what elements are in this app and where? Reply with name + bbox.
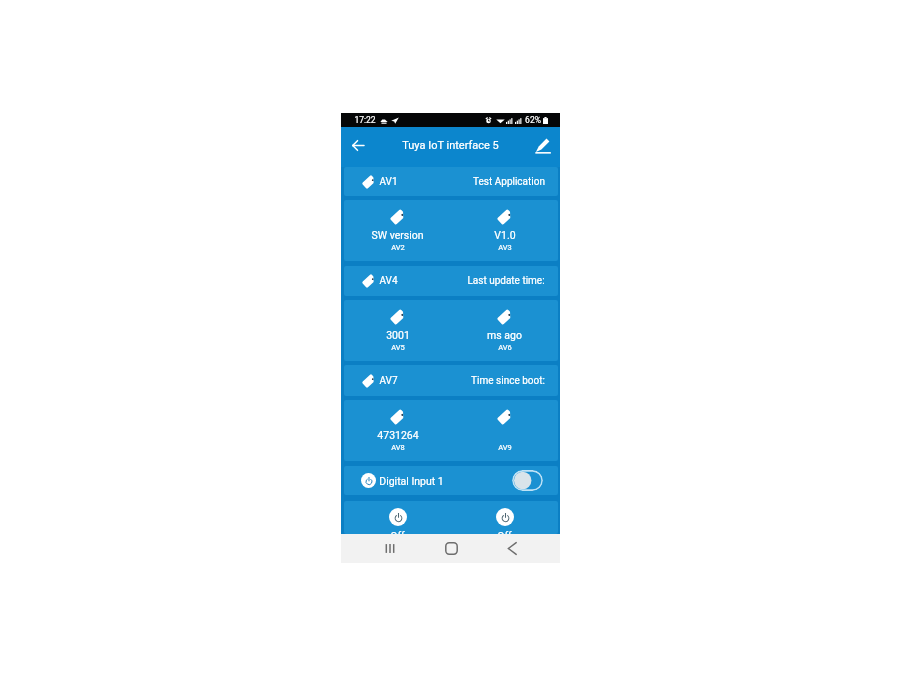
staticText: AV9: [498, 443, 512, 452]
button[interactable]: Recents: [370, 534, 410, 563]
staticText: ms ago: [487, 329, 522, 341]
staticText: SW version: [371, 229, 424, 241]
button[interactable]: SW version: [344, 200, 451, 261]
staticText: Test Application: [473, 176, 545, 188]
staticText: V1.0: [494, 229, 516, 241]
staticText: Off: [390, 530, 405, 534]
staticText: AV8: [391, 443, 405, 452]
button[interactable]: Back: [492, 534, 532, 563]
button[interactable]: AV1: [344, 167, 558, 196]
staticText: 4731264: [377, 429, 419, 441]
button[interactable]: 4731264: [344, 400, 451, 461]
button[interactable]: Digital Input 1: [344, 466, 558, 495]
staticText: AV1: [379, 176, 398, 188]
button[interactable]: AV7: [344, 365, 558, 396]
button[interactable]: ms ago: [451, 300, 558, 361]
staticText: AV6: [498, 343, 512, 352]
button[interactable]: Back: [347, 134, 369, 156]
staticText: Tuya IoT interface 5: [402, 139, 499, 152]
button[interactable]: Home: [431, 534, 471, 563]
button[interactable]: Toggle Digital Input 1: [512, 470, 543, 491]
button[interactable]: Off: [451, 501, 558, 534]
staticText: 17:22: [354, 115, 376, 125]
button[interactable]: Off: [344, 501, 451, 534]
staticText: AV3: [498, 243, 512, 252]
staticText: AV7: [379, 375, 398, 387]
staticText: AV4: [379, 275, 398, 287]
button[interactable]: Edit: [532, 134, 554, 156]
button[interactable]: AV9: [451, 400, 558, 461]
staticText: AV5: [391, 343, 405, 352]
button[interactable]: 3001: [344, 300, 451, 361]
button[interactable]: V1.0: [451, 200, 558, 261]
staticText: Last update time:: [467, 275, 545, 287]
button[interactable]: AV4: [344, 266, 558, 296]
staticText: Off: [497, 530, 512, 534]
staticText: 3001: [386, 329, 410, 341]
staticText: Time since boot:: [471, 375, 545, 387]
staticText: Digital Input 1: [379, 475, 444, 487]
staticText: 62%: [525, 115, 541, 125]
staticText: AV2: [391, 243, 405, 252]
